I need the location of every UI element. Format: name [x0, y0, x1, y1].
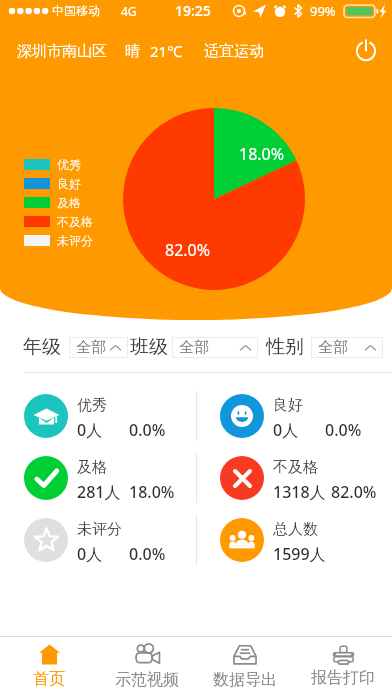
staticText: 首页 [33, 669, 65, 689]
staticText: 未评分 [77, 520, 122, 539]
button[interactable]: 总人数 [196, 509, 392, 571]
staticText: 1318人 [273, 481, 326, 503]
staticText: 示范视频 [115, 670, 179, 690]
staticText: 全部 [76, 338, 106, 357]
button[interactable]: 优秀 [0, 385, 196, 447]
staticText: 中国移动 [52, 3, 100, 18]
staticText: 281人 [77, 481, 121, 503]
staticText: 21℃ [150, 41, 183, 61]
staticText: 良好 [57, 176, 81, 191]
button[interactable]: Power [350, 35, 382, 67]
staticText: 年级 [23, 335, 61, 359]
button[interactable]: 未评分 [0, 509, 196, 571]
staticText: 晴 [125, 42, 140, 61]
staticText: 4G [121, 3, 137, 19]
staticText: 全部 [318, 338, 348, 357]
staticText: 总人数 [273, 520, 318, 539]
staticText: 良好 [273, 396, 303, 415]
button[interactable]: 示范视频 [98, 637, 196, 696]
button[interactable]: 全部 [172, 337, 258, 358]
staticText: 0人 [77, 543, 103, 565]
staticText: 未评分 [57, 233, 93, 248]
button[interactable]: 数据导出 [196, 637, 294, 696]
staticText: 深圳市南山区 [17, 42, 107, 61]
staticText: 不及格 [57, 214, 93, 229]
staticText: 优秀 [77, 396, 107, 415]
button[interactable]: 首页 [0, 637, 98, 696]
staticText: 性别 [266, 335, 304, 359]
staticText: 82.0% [331, 481, 377, 503]
staticText: 0人 [77, 419, 103, 441]
button[interactable]: 全部 [69, 337, 128, 358]
staticText: 报告打印 [311, 668, 375, 688]
staticText: 99% [310, 2, 336, 20]
button[interactable]: 及格 [0, 447, 196, 509]
staticText: 不及格 [273, 458, 318, 477]
staticText: 19:25 [175, 1, 211, 20]
staticText: 优秀 [57, 157, 81, 172]
staticText: 1599人 [273, 543, 326, 565]
staticText: 数据导出 [213, 670, 277, 690]
button[interactable]: 报告打印 [294, 637, 392, 696]
staticText: 全部 [179, 338, 209, 357]
staticText: 18.0% [129, 481, 175, 503]
staticText: 班级 [130, 335, 168, 359]
button[interactable]: 良好 [196, 385, 392, 447]
staticText: 0.0% [129, 419, 166, 441]
button[interactable]: 全部 [311, 337, 383, 358]
button[interactable]: 不及格 [196, 447, 392, 509]
staticText: 0人 [273, 419, 299, 441]
staticText: 及格 [57, 195, 81, 210]
staticText: 18.0% [239, 143, 285, 165]
staticText: 82.0% [165, 239, 211, 261]
staticText: 0.0% [325, 419, 362, 441]
staticText: 适宜运动 [204, 42, 264, 61]
staticText: 及格 [77, 458, 107, 477]
staticText: 0.0% [129, 543, 166, 565]
